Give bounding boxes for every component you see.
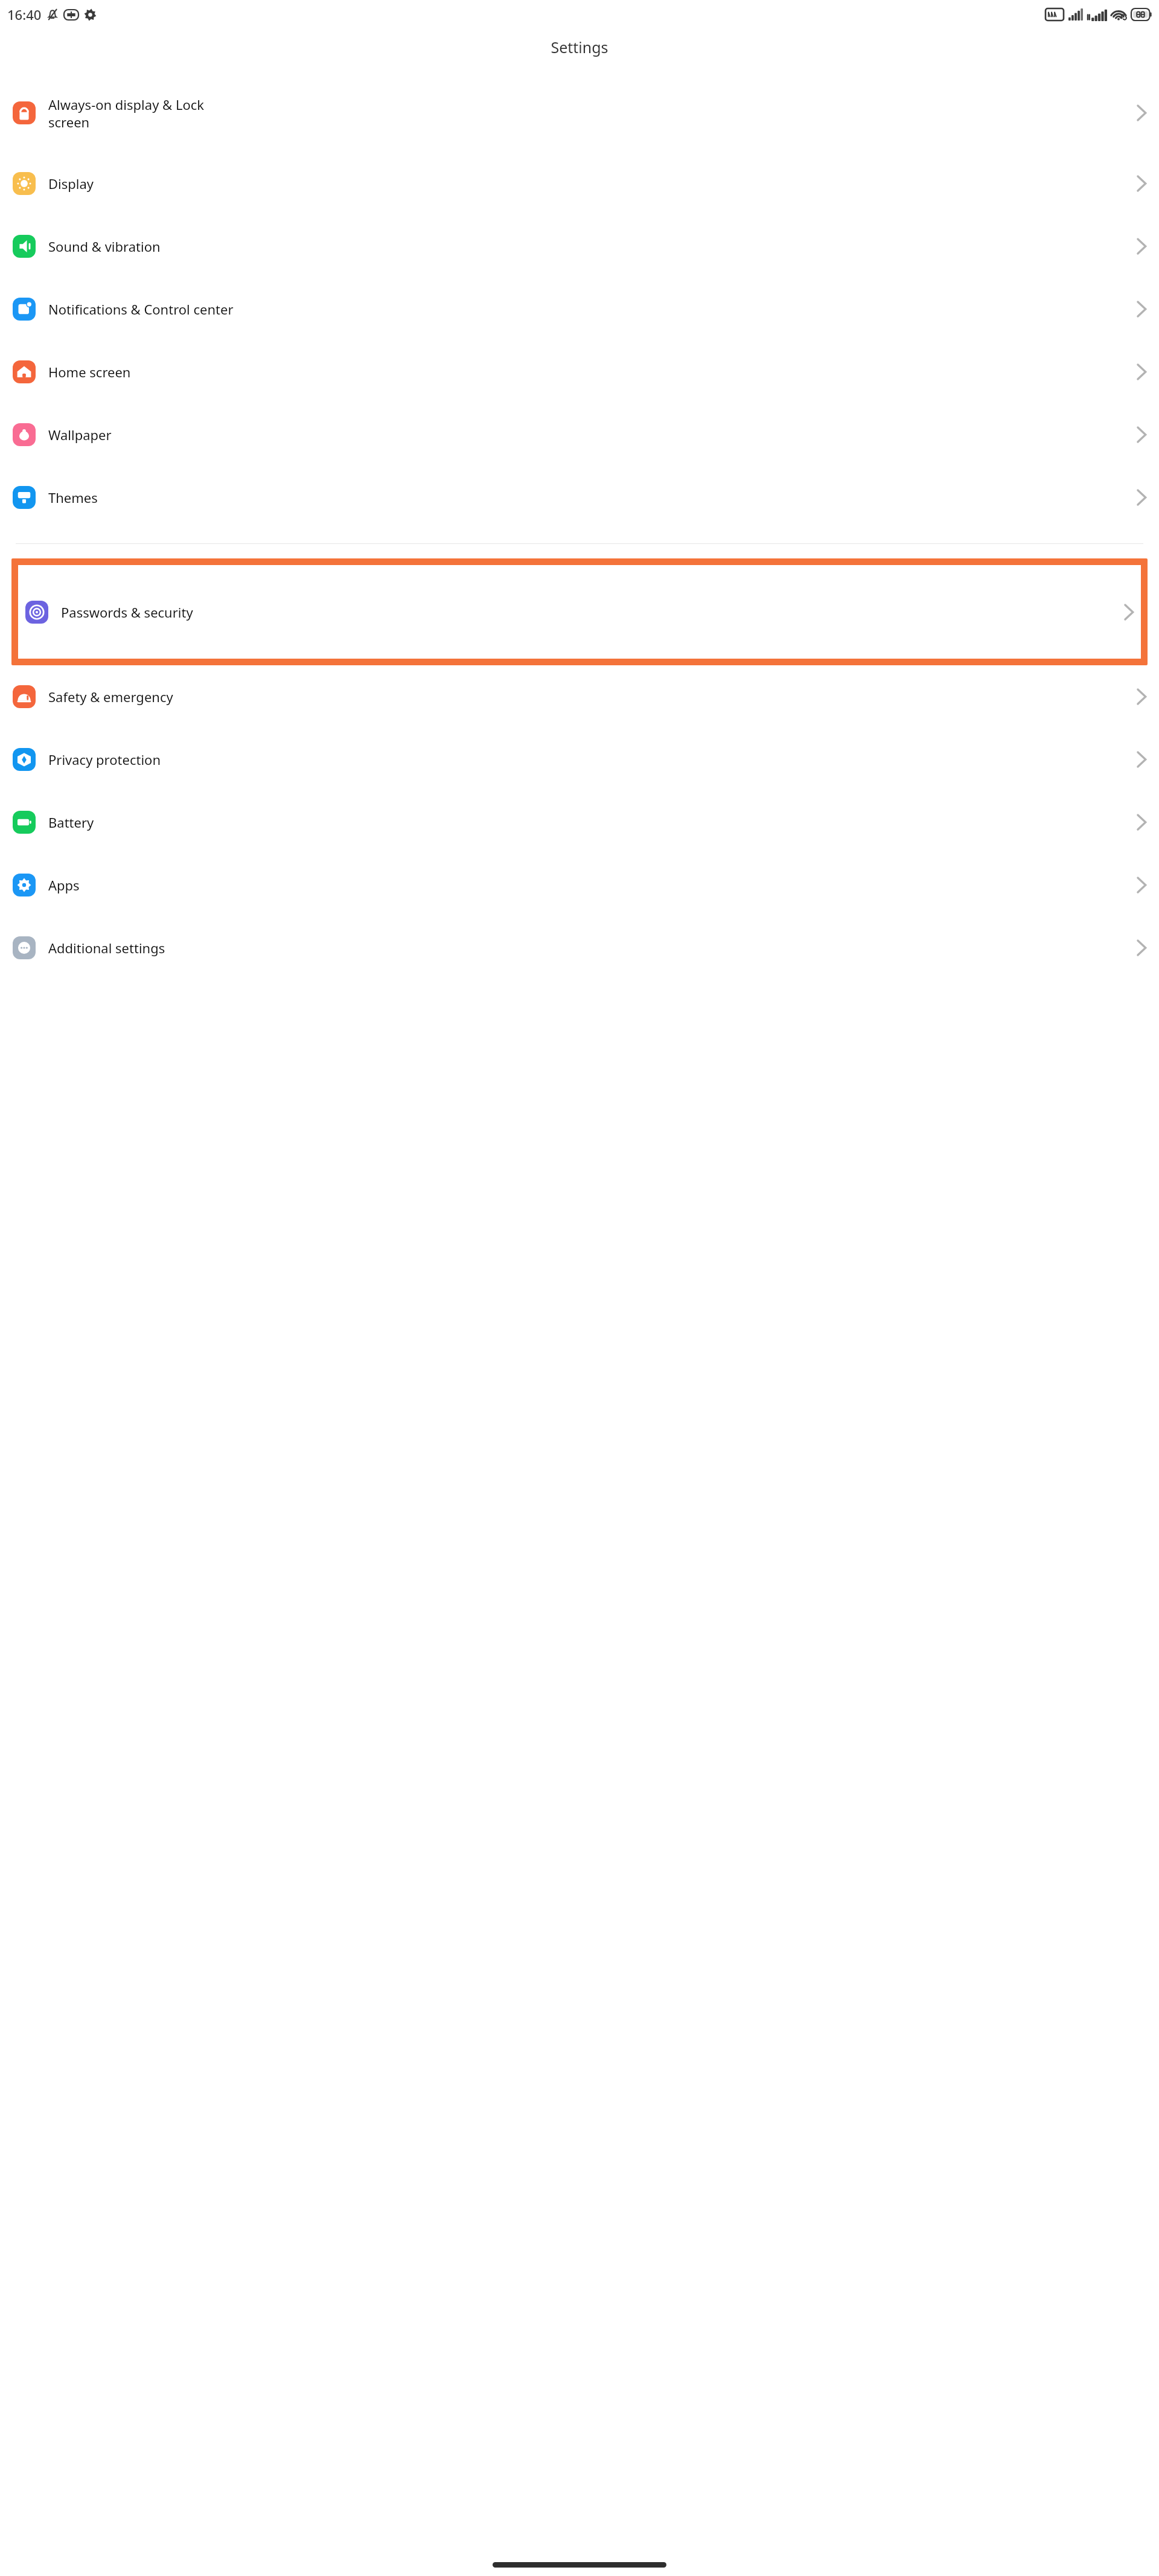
staticText: Additional settings [48, 939, 1137, 957]
staticText: Notifications & Control center [48, 300, 1137, 318]
staticText: Safety & emergency [48, 688, 1137, 706]
button[interactable]: Safety & emergency [0, 665, 1159, 728]
button[interactable]: Home screen [0, 340, 1159, 403]
button[interactable]: Privacy protection [0, 728, 1159, 791]
button[interactable]: Battery [0, 791, 1159, 854]
button[interactable]: Always-on display & Lock screen [0, 74, 1159, 152]
button[interactable]: Notifications & Control center [0, 278, 1159, 340]
staticText: Home screen [48, 363, 1137, 381]
staticText: Display [48, 174, 1137, 193]
button[interactable]: Themes [0, 466, 1159, 529]
staticText: Themes [48, 488, 1137, 507]
button[interactable]: Display [0, 152, 1159, 215]
staticText: Wallpaper [48, 426, 1137, 444]
staticText: Apps [48, 876, 1137, 894]
staticText: Sound & vibration [48, 237, 1137, 255]
button[interactable]: Apps [0, 854, 1159, 916]
staticText: Privacy protection [48, 750, 1137, 769]
button[interactable]: Additional settings [0, 916, 1159, 979]
button[interactable]: Wallpaper [0, 403, 1159, 466]
button[interactable]: Passwords & security [18, 565, 1141, 659]
staticText: Always-on display & Lock screen [48, 95, 1137, 131]
staticText: Battery [48, 813, 1137, 831]
staticText: Settings [551, 37, 608, 57]
button[interactable]: Sound & vibration [0, 215, 1159, 278]
staticText: Passwords & security [61, 603, 1124, 621]
staticText: 16:40 [7, 5, 42, 24]
